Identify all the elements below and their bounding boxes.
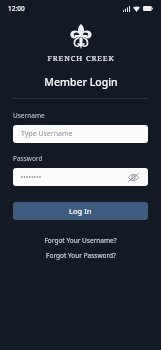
button[interactable]: Forgot Your Username?	[0, 236, 161, 245]
button[interactable]: Show password	[127, 171, 140, 184]
staticText: Forgot Your Username?	[44, 236, 117, 245]
staticText: 12:00	[8, 4, 25, 13]
staticText: Log In	[69, 206, 92, 216]
staticText: Username	[13, 111, 45, 120]
staticText: Forgot Your Password?	[46, 251, 116, 260]
button[interactable]: Forgot Your Password?	[0, 251, 161, 260]
staticText: FRENCH CREEK	[47, 53, 115, 63]
staticText: Member Login	[44, 75, 118, 89]
button[interactable]: Type Username	[13, 125, 148, 143]
staticText: Password	[13, 154, 43, 163]
button[interactable]: Log In	[13, 202, 148, 220]
staticText: Type Username	[21, 129, 73, 139]
button[interactable]: Show password	[13, 168, 148, 186]
